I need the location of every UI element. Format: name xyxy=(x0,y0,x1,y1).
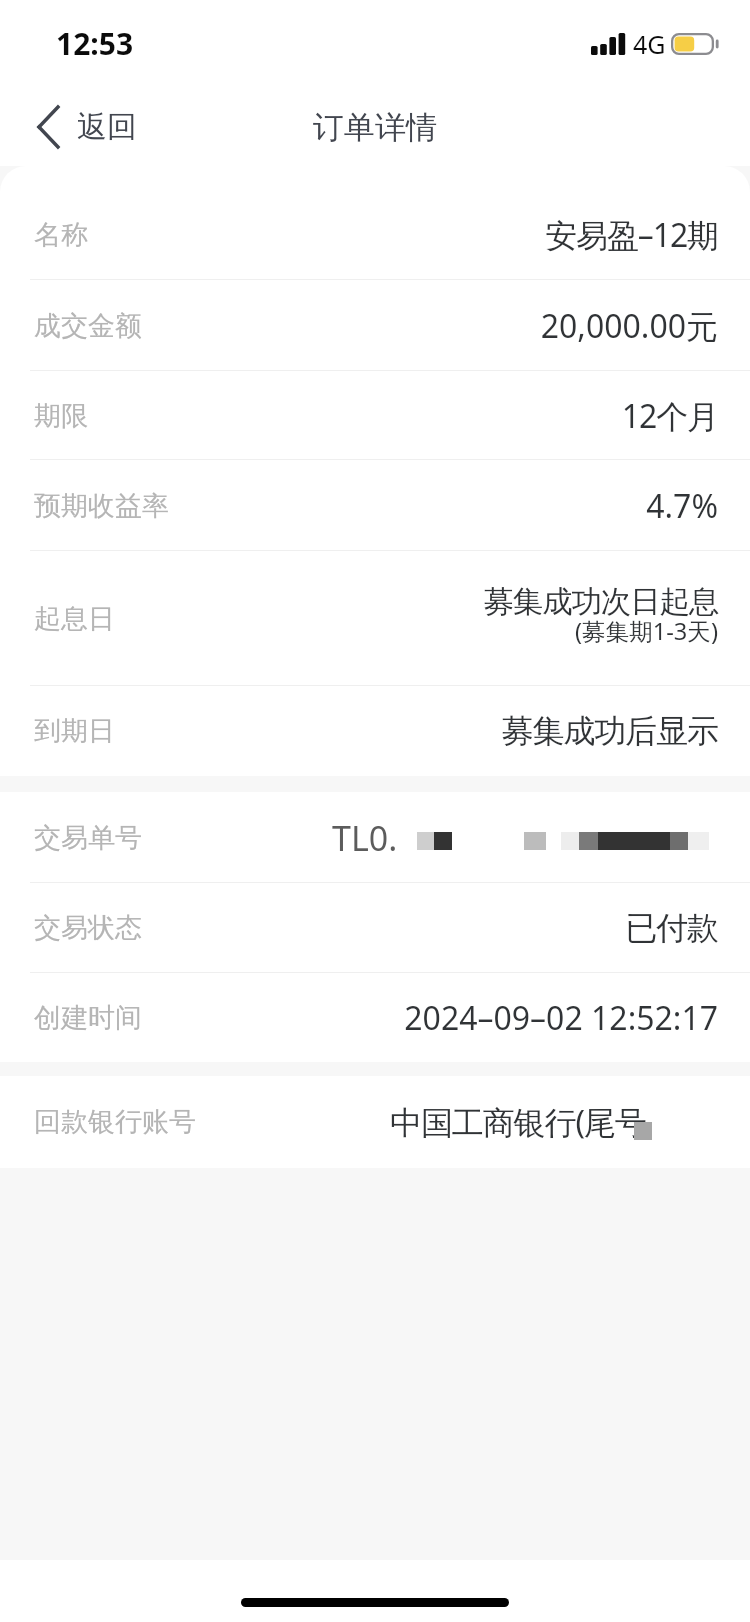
staticText: 返回 xyxy=(77,108,137,146)
button[interactable]: 预期收益率 xyxy=(0,460,750,551)
staticText: 4G xyxy=(633,27,666,61)
staticText: 期限 xyxy=(34,399,88,433)
button[interactable]: 到期日 xyxy=(0,686,750,776)
staticText: 成交金额 xyxy=(34,309,142,343)
staticText: 起息日 xyxy=(34,602,115,636)
staticText: 12:53 xyxy=(56,23,134,64)
staticText: 订单详情 xyxy=(313,108,437,147)
staticText: 回款银行账号 xyxy=(34,1105,196,1139)
staticText: 名称 xyxy=(34,218,88,252)
staticText: 安易盈–12期 xyxy=(545,213,718,257)
staticText: TL0. xyxy=(332,815,398,861)
staticText: 募集成功后显示 xyxy=(501,711,718,751)
button[interactable]: 创建时间 xyxy=(0,973,750,1062)
staticText: 4.7% xyxy=(646,484,718,528)
staticText: 到期日 xyxy=(34,714,115,748)
button[interactable]: 返回 xyxy=(0,98,161,156)
staticText: 交易单号 xyxy=(34,821,142,855)
staticText: 已付款 xyxy=(625,908,718,948)
staticText: 2024–09–02 12:52:17 xyxy=(404,996,718,1040)
staticText: (募集期1-3天) xyxy=(574,615,718,647)
staticText: 12个月 xyxy=(621,394,718,438)
button[interactable]: 名称 xyxy=(0,166,750,280)
button[interactable]: 交易状态 xyxy=(0,883,750,973)
staticText: 中国工商银行(尾号 xyxy=(390,1100,646,1144)
staticText: 20,000.00元 xyxy=(540,304,718,348)
staticText: 交易状态 xyxy=(34,911,142,945)
staticText: 创建时间 xyxy=(34,1001,142,1035)
button[interactable]: 期限 xyxy=(0,371,750,460)
staticText: 募集成功次日起息 xyxy=(483,583,718,621)
button[interactable]: 回款银行账号 xyxy=(0,1076,750,1168)
button[interactable]: 交易单号 xyxy=(0,792,750,883)
button[interactable]: 成交金额 xyxy=(0,280,750,371)
button[interactable]: 起息日 xyxy=(0,551,750,686)
staticText: 预期收益率 xyxy=(34,489,169,523)
